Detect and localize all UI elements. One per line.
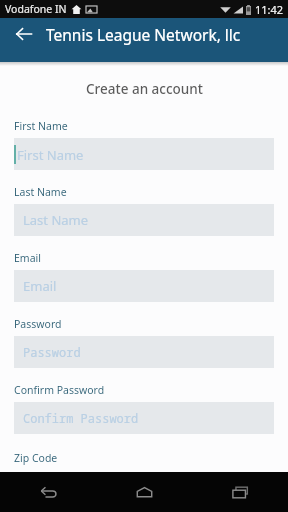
button[interactable]: Last Name (14, 204, 274, 236)
staticText: Confirm Password (23, 410, 139, 426)
staticText: Confirm Password (14, 383, 105, 397)
staticText: Last Name (23, 211, 89, 229)
staticText: First Name (14, 119, 68, 133)
staticText: First Name (17, 146, 84, 164)
staticText: Vodafone IN (5, 2, 67, 16)
staticText: Password (14, 317, 62, 331)
staticText: 11:42 (255, 2, 284, 17)
staticText: Tennis League Network, llc (46, 24, 241, 45)
button[interactable]: Email (14, 270, 274, 302)
staticText: Email (23, 277, 57, 295)
button[interactable]: Confirm Password (14, 402, 274, 434)
staticText: Password (23, 344, 81, 360)
staticText: Create an account (86, 80, 203, 98)
button[interactable]: Back (8, 18, 40, 50)
button[interactable]: Password (14, 336, 274, 368)
button[interactable]: First Name (14, 138, 274, 170)
button[interactable]: Recent apps (192, 472, 288, 512)
button[interactable]: Back (0, 472, 96, 512)
button[interactable]: Home (96, 472, 192, 512)
staticText: Email (14, 251, 41, 265)
staticText: Last Name (14, 185, 67, 199)
staticText: Zip Code (14, 451, 58, 465)
